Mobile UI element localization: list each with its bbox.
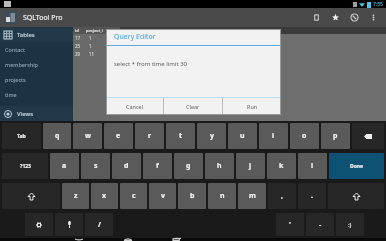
button[interactable]: Contact — [0, 42, 73, 57]
button[interactable]: Close — [345, 8, 364, 27]
button[interactable]: r — [135, 123, 164, 149]
button[interactable]: , — [268, 183, 296, 209]
staticText: select * from time limit 30 — [114, 60, 187, 68]
button[interactable]: q — [43, 123, 71, 149]
staticText: 1 — [89, 43, 92, 49]
button[interactable]: w — [73, 123, 102, 149]
button[interactable]: mic — [55, 213, 83, 236]
staticText: p — [333, 131, 338, 141]
button[interactable]: App icon — [4, 11, 17, 24]
staticText: Tables — [17, 31, 35, 39]
button[interactable]: c — [120, 183, 147, 209]
staticText: t — [179, 131, 183, 141]
button[interactable]: t — [166, 123, 195, 149]
button[interactable]: m — [238, 183, 266, 209]
staticText: Cancel — [126, 103, 144, 110]
button[interactable]: d — [112, 153, 141, 179]
staticText: id — [75, 28, 79, 33]
staticText: a — [62, 161, 67, 171]
staticText: i — [272, 131, 275, 141]
staticText: 1 — [89, 35, 92, 41]
button[interactable]: h date bug, and also added the time dif.… — [120, 52, 386, 61]
button[interactable]: Recent apps — [170, 238, 184, 241]
button[interactable]: emoji — [336, 213, 364, 236]
button[interactable]: del — [352, 123, 384, 149]
staticText: 25 — [75, 43, 81, 49]
button[interactable]: s — [81, 153, 110, 179]
button[interactable]: o — [290, 123, 319, 149]
button[interactable]: k — [267, 153, 296, 179]
button[interactable]: f — [143, 153, 172, 179]
button[interactable]: Cancel — [106, 98, 163, 115]
button[interactable]: b — [178, 183, 206, 209]
button[interactable]: g — [174, 153, 203, 179]
button[interactable]: u — [228, 123, 257, 149]
staticText: time — [5, 91, 17, 98]
staticText: membership — [5, 61, 38, 68]
staticText: Views — [17, 110, 34, 118]
staticText: q — [55, 131, 60, 141]
button[interactable]: Home — [121, 238, 135, 241]
button[interactable]: Done — [329, 153, 384, 179]
button[interactable]: x — [91, 183, 118, 209]
button[interactable]: a — [50, 153, 79, 179]
button[interactable]: l — [298, 153, 327, 179]
button[interactable]: 29 — [73, 50, 120, 58]
staticText: Tab — [17, 133, 26, 140]
button[interactable]: n — [208, 183, 236, 209]
staticText: Query Editor — [114, 32, 156, 42]
staticText: b — [190, 191, 195, 201]
staticText: - — [319, 220, 322, 230]
staticText: n Api — [120, 44, 132, 51]
staticText: ' — [289, 220, 291, 230]
button[interactable]: z — [62, 183, 89, 209]
button[interactable]: Favorite — [326, 8, 345, 27]
button[interactable]: Clear — [164, 98, 222, 115]
button[interactable]: / — [85, 213, 113, 236]
button[interactable]: ?123 — [2, 153, 48, 179]
button[interactable]: h — [205, 153, 234, 179]
button[interactable]: v — [149, 183, 176, 209]
staticText: y — [210, 131, 214, 141]
button[interactable]: Views — [0, 106, 73, 121]
staticText: z — [74, 191, 78, 201]
staticText: s — [94, 161, 98, 171]
button[interactable]: Bookmark — [307, 8, 326, 27]
button[interactable]: n iOS Front End for Iphone — [120, 34, 386, 43]
button[interactable]: membership — [0, 57, 73, 72]
button[interactable]: y — [197, 123, 226, 149]
button[interactable]: More options — [364, 8, 383, 27]
button[interactable]: Run — [223, 98, 281, 115]
button[interactable]: time — [0, 87, 73, 102]
staticText: projects — [5, 76, 26, 83]
button[interactable]: Tab — [2, 123, 41, 149]
button[interactable]: e — [104, 123, 133, 149]
button[interactable]: shift — [2, 183, 60, 209]
button[interactable]: i — [259, 123, 288, 149]
staticText: . — [311, 191, 313, 201]
button[interactable]: - — [306, 213, 334, 236]
button[interactable]: j — [236, 153, 265, 179]
button[interactable]: 17 — [73, 34, 120, 42]
button[interactable]: ' — [276, 213, 304, 236]
staticText: 7:55 — [373, 1, 383, 8]
staticText: SQLTool Pro — [23, 13, 63, 23]
staticText: Clear — [186, 103, 200, 110]
button[interactable]: 25 — [73, 42, 120, 50]
button[interactable]: shift — [328, 183, 384, 209]
staticText: project_i — [86, 28, 103, 33]
button[interactable]: Tables — [0, 27, 73, 42]
staticText: u — [240, 131, 245, 141]
button[interactable]: settings — [25, 213, 53, 236]
button[interactable]: n Api — [120, 43, 386, 52]
button[interactable]: projects — [0, 72, 73, 87]
staticText: Run — [247, 103, 258, 110]
staticText: h — [217, 161, 222, 171]
staticText: x — [102, 191, 107, 201]
staticText: n — [220, 191, 225, 201]
button[interactable]: Hide keyboard — [72, 238, 86, 241]
button[interactable]: . — [298, 183, 326, 209]
button[interactable]: p — [321, 123, 350, 149]
staticText: j — [249, 161, 252, 171]
